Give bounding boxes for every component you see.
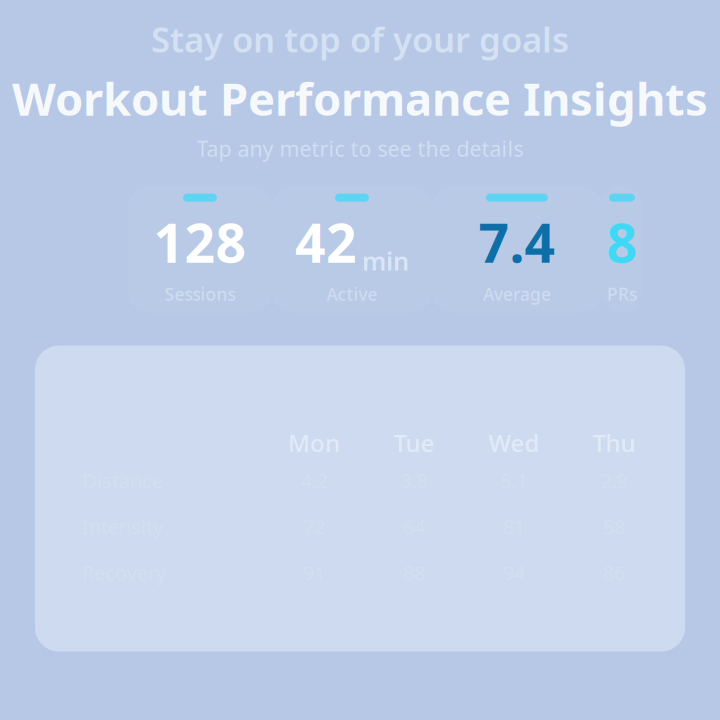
staticText: PRs xyxy=(607,282,637,305)
staticText: 8 xyxy=(606,207,637,277)
button[interactable]: 8 xyxy=(602,187,642,313)
staticText: Mon xyxy=(288,427,340,458)
staticText: Tue xyxy=(393,427,434,458)
staticText: Tap any metric to see the details xyxy=(196,134,523,162)
staticText: 128 xyxy=(153,207,246,277)
staticText: Workout Performance Insights xyxy=(12,68,708,128)
staticText: Stay on top of your goals xyxy=(151,16,569,62)
button[interactable]: 128 xyxy=(128,187,272,313)
button[interactable]: 7.4 xyxy=(432,187,602,313)
staticText: Active xyxy=(326,282,377,305)
staticText: Wed xyxy=(488,427,539,458)
staticText: 42 xyxy=(295,207,357,277)
staticText: 7.4 xyxy=(478,207,555,277)
staticText: Average xyxy=(483,282,551,305)
staticText: Sessions xyxy=(164,282,235,305)
staticText: Thu xyxy=(592,427,635,458)
button[interactable]: 42 xyxy=(272,187,432,313)
staticText: min xyxy=(362,244,409,277)
